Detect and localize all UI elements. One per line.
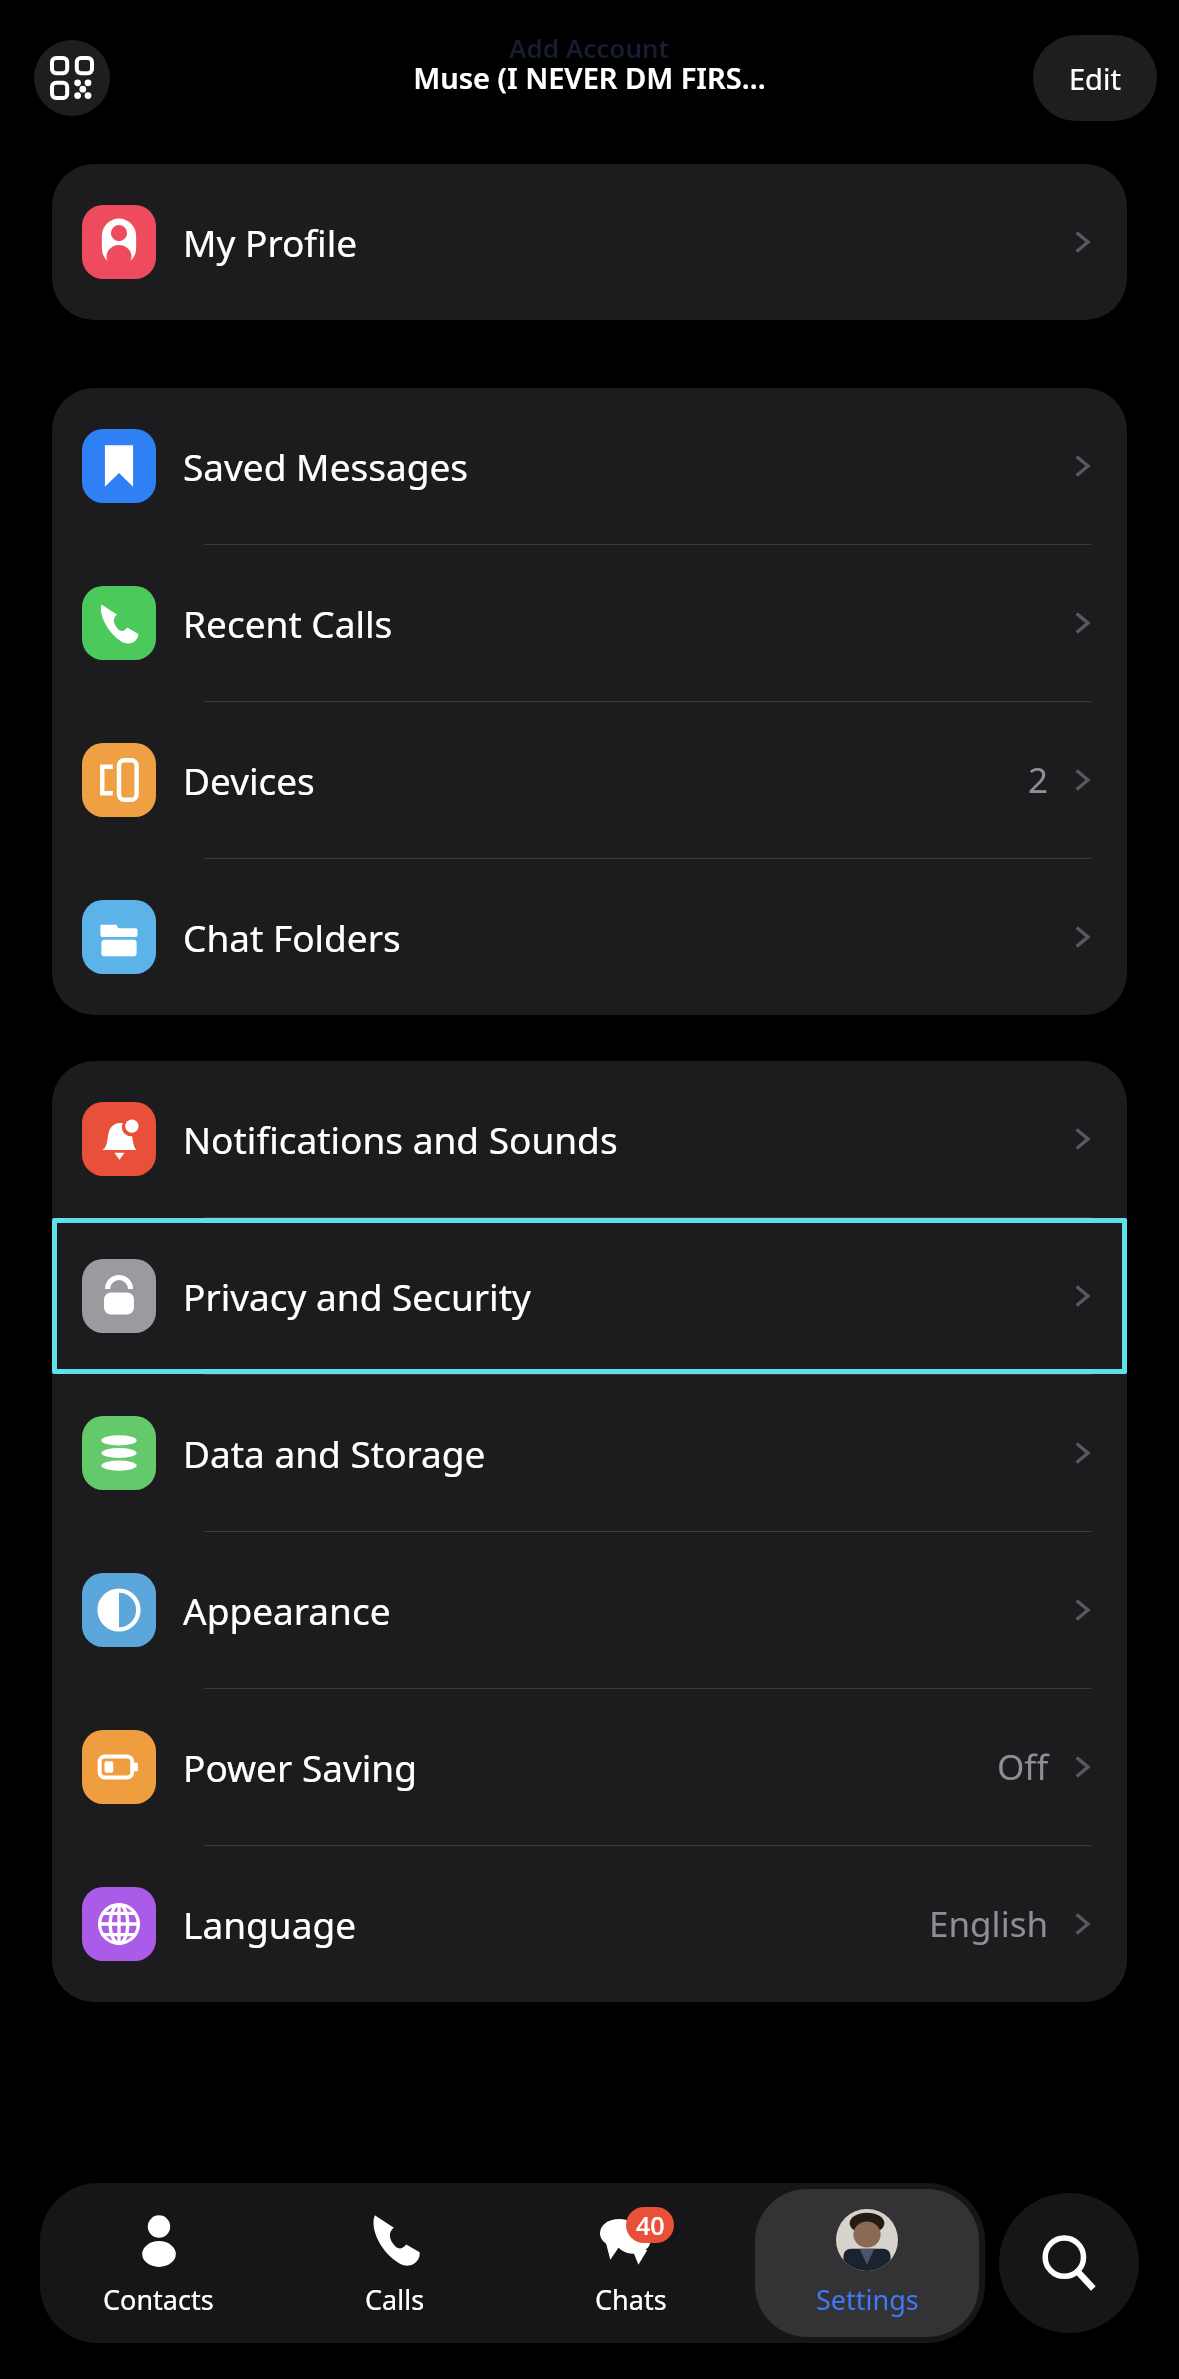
button[interactable]: QR code xyxy=(34,40,110,116)
staticText: Power Saving xyxy=(183,1742,997,1792)
staticText: Notifications and Sounds xyxy=(183,1114,1067,1164)
staticText: English xyxy=(929,1900,1049,1948)
button[interactable]: 40 xyxy=(519,2189,743,2337)
staticText: Add Account xyxy=(509,30,670,65)
button[interactable]: Privacy and Security xyxy=(52,1218,1127,1374)
button[interactable]: Notifications and Sounds xyxy=(52,1061,1127,1217)
staticText: Off xyxy=(997,1743,1049,1791)
button[interactable]: Settings xyxy=(755,2189,979,2337)
button[interactable]: Power Saving xyxy=(52,1689,1127,1845)
button[interactable]: Chat Folders xyxy=(52,859,1127,1015)
button[interactable]: My Profile xyxy=(52,164,1127,320)
button[interactable]: Data and Storage xyxy=(52,1375,1127,1531)
button[interactable]: Appearance xyxy=(52,1532,1127,1688)
staticText: Recent Calls xyxy=(183,598,1067,648)
staticText: Settings xyxy=(816,2281,919,2318)
button[interactable]: Edit xyxy=(1033,35,1157,121)
button[interactable]: Recent Calls xyxy=(52,545,1127,701)
staticText: Saved Messages xyxy=(183,441,1067,491)
staticText: 2 xyxy=(1028,756,1049,804)
staticText: Contacts xyxy=(103,2281,214,2318)
button[interactable]: Devices xyxy=(52,702,1127,858)
button[interactable]: Saved Messages xyxy=(52,388,1127,544)
staticText: My Profile xyxy=(183,217,1067,267)
button[interactable]: Search xyxy=(999,2193,1139,2333)
staticText: Edit xyxy=(1069,59,1121,98)
staticText: Calls xyxy=(365,2281,425,2318)
staticText: Language xyxy=(183,1899,929,1949)
staticText: Devices xyxy=(183,755,1028,805)
button[interactable]: Contacts xyxy=(46,2189,271,2337)
staticText: Data and Storage xyxy=(183,1428,1067,1478)
button[interactable]: Language xyxy=(52,1846,1127,2002)
staticText: 40 xyxy=(636,2208,665,2242)
staticText: Chat Folders xyxy=(183,912,1067,962)
staticText: Muse (I NEVER DM FIRS… xyxy=(413,58,766,97)
staticText: Appearance xyxy=(183,1585,1067,1635)
button[interactable]: Calls xyxy=(283,2189,507,2337)
staticText: Chats xyxy=(595,2281,667,2318)
staticText: Privacy and Security xyxy=(183,1271,1067,1321)
